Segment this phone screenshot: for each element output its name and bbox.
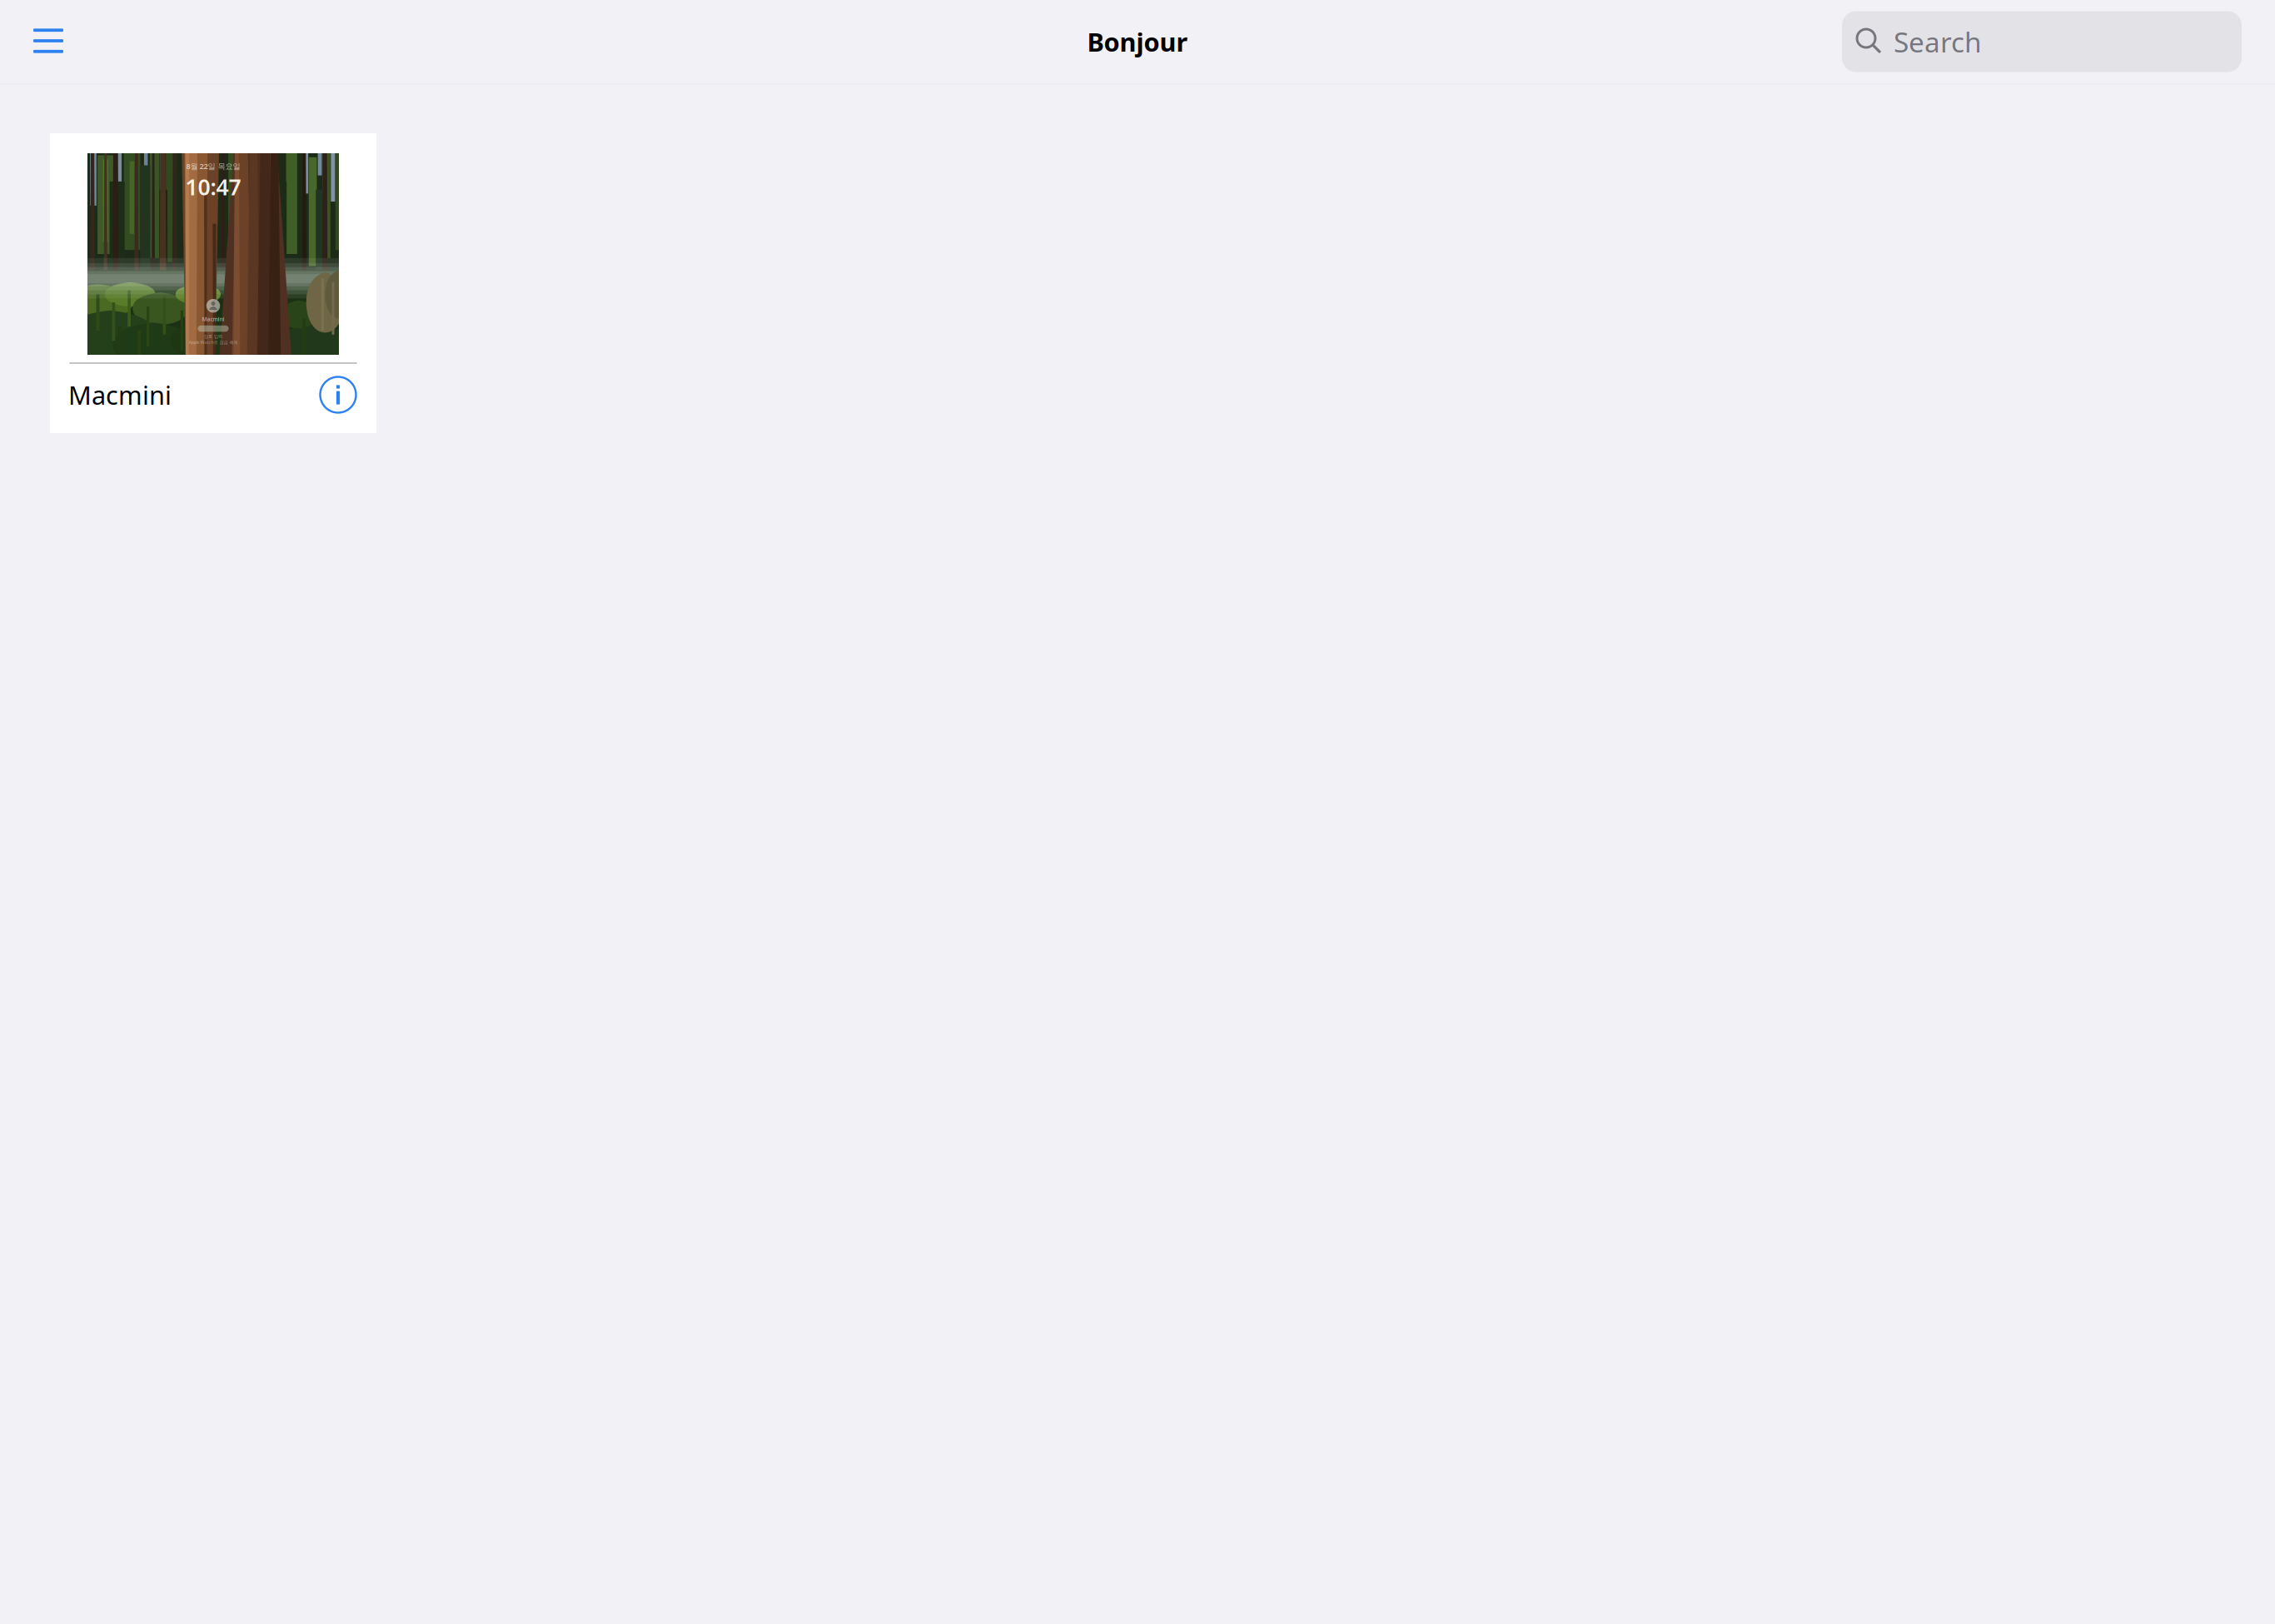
button[interactable]: Search bbox=[1842, 11, 2242, 72]
staticText: Search bbox=[1894, 23, 1982, 60]
staticText: Apple Watch로 잠금 해제 bbox=[189, 339, 238, 345]
button[interactable]: Info bbox=[316, 373, 360, 416]
staticText: 암호 입력 bbox=[204, 334, 222, 339]
staticText: 10:47 bbox=[185, 172, 241, 202]
staticText: 8월 22일 목요일 bbox=[186, 161, 240, 171]
staticText: Bonjour bbox=[1087, 25, 1188, 59]
staticText: Macmini bbox=[68, 378, 172, 412]
staticText: Macmini bbox=[202, 315, 224, 323]
button[interactable]: Show Sidebar bbox=[18, 12, 78, 72]
button[interactable]: Macmini bbox=[50, 133, 376, 433]
